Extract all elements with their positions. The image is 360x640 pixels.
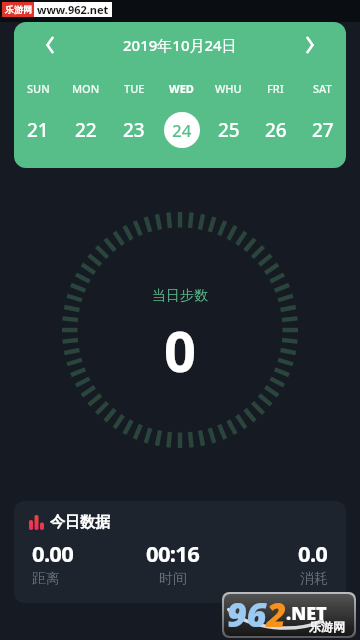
staticText: 26	[265, 117, 287, 143]
staticText: WHU	[215, 81, 242, 96]
staticText: 距离	[32, 570, 60, 588]
button[interactable]	[38, 33, 62, 57]
staticText: 当日步数	[152, 287, 208, 305]
staticText: FRI	[267, 81, 284, 96]
staticText: SAT	[313, 81, 332, 96]
staticText: 0	[164, 312, 197, 382]
staticText: 消耗	[300, 570, 328, 588]
staticText: MON	[72, 81, 100, 96]
staticText: 23	[123, 117, 145, 143]
staticText: 00:16	[146, 538, 200, 568]
staticText: 时间	[159, 570, 187, 588]
button[interactable]	[298, 33, 322, 57]
staticText: 0.0	[298, 538, 328, 568]
staticText: 27	[312, 117, 334, 143]
button[interactable]: 27	[305, 112, 341, 148]
button[interactable]: 24	[164, 112, 200, 148]
staticText: 0.00	[32, 538, 74, 568]
button[interactable]: 23	[116, 112, 152, 148]
staticText: www.962.net	[37, 2, 109, 17]
staticText: 乐游网	[5, 4, 32, 15]
staticText: 22	[75, 117, 97, 143]
staticText: .NET	[286, 601, 327, 626]
staticText: WED	[169, 81, 194, 96]
button[interactable]: 962	[224, 594, 354, 636]
staticText: 乐游网	[309, 619, 345, 634]
staticText: 今日数据	[50, 513, 110, 531]
button[interactable]: 26	[258, 112, 294, 148]
staticText: 962	[227, 594, 287, 633]
staticText: 2019年10月24日	[123, 35, 237, 55]
staticText: TUE	[124, 81, 145, 96]
button[interactable]: 25	[211, 112, 247, 148]
staticText: SUN	[27, 81, 50, 96]
staticText: 21	[27, 117, 49, 143]
button[interactable]: 21	[20, 112, 56, 148]
button[interactable]: 22	[68, 112, 104, 148]
staticText: 24	[172, 119, 192, 142]
staticText: 25	[218, 117, 240, 143]
